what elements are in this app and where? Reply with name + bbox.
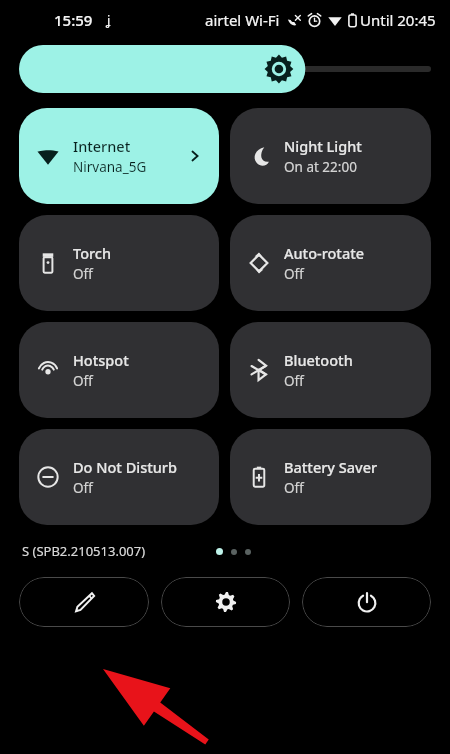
button[interactable]: Edit tiles	[19, 577, 149, 627]
staticText: Off	[73, 265, 93, 283]
button[interactable]: Hotspot	[19, 322, 219, 418]
button[interactable]: Bluetooth	[230, 322, 431, 418]
staticText: Night Light	[284, 136, 362, 156]
staticText: 15:59	[54, 10, 93, 30]
staticText: Off	[284, 265, 304, 283]
staticText: Battery Saver	[284, 457, 378, 477]
staticText: Bluetooth	[284, 350, 353, 370]
button[interactable]	[19, 45, 431, 93]
staticText: Auto-rotate	[284, 243, 365, 263]
staticText: Internet	[73, 136, 131, 156]
staticText: Off	[73, 479, 93, 497]
button[interactable]: Power	[302, 577, 431, 627]
staticText: Nirvana_5G	[73, 158, 147, 176]
staticText: Off	[284, 372, 304, 390]
staticText: S (SPB2.210513.007)	[22, 542, 146, 560]
staticText: ʝ	[107, 11, 111, 29]
staticText: Off	[73, 372, 93, 390]
staticText: Do Not Disturb	[73, 457, 177, 477]
button[interactable]: Do Not Disturb	[19, 429, 219, 525]
staticText: Off	[284, 479, 304, 497]
button[interactable]: Torch	[19, 215, 219, 311]
button[interactable]: Auto-rotate	[230, 215, 431, 311]
staticText: Torch	[73, 243, 112, 263]
staticText: On at 22:00	[284, 158, 357, 176]
button[interactable]: Battery Saver	[230, 429, 431, 525]
staticText: Until 20:45	[360, 10, 436, 30]
button[interactable]: Internet	[19, 108, 219, 204]
button[interactable]: Night Light	[230, 108, 431, 204]
staticText: Hotspot	[73, 350, 129, 370]
staticText: airtel Wi-Fi	[205, 10, 280, 30]
button[interactable]: Settings	[161, 577, 290, 627]
